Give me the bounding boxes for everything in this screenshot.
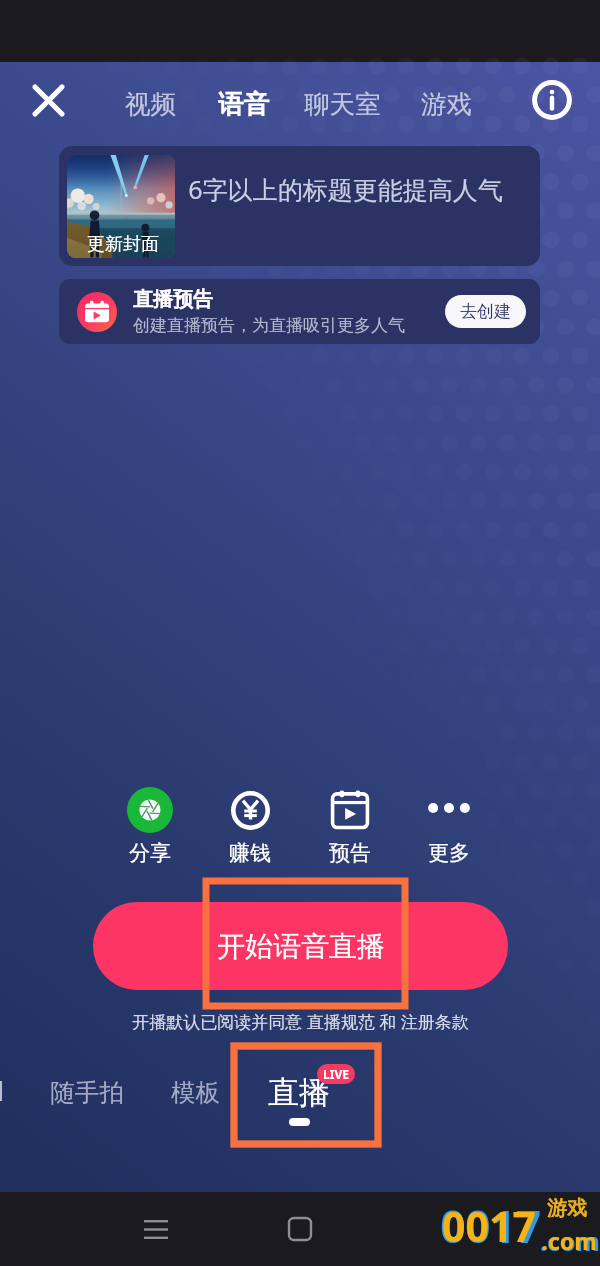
staticText: 随手拍 [50,1077,124,1108]
staticText: 模板 [171,1077,220,1108]
staticText: .com [541,1225,597,1256]
button[interactable]: 随手拍 [48,1075,126,1110]
button[interactable]: Close [22,74,74,126]
button[interactable]: 赚钱 [210,786,290,866]
staticText: 赚钱 [229,840,271,866]
button[interactable]: 分享 [110,786,190,866]
staticText: LIVE [323,1066,349,1082]
staticText: 直播 [268,1073,330,1112]
button[interactable]: Home [277,1206,323,1252]
staticText: 预告 [329,840,371,866]
staticText: 6字以上的标题更能提高人气 [188,172,503,206]
staticText: 游戏 [547,1196,587,1221]
staticText: 直播预告 [133,287,213,312]
staticText: 游戏 [421,88,472,120]
staticText: 更多 [428,840,470,866]
button[interactable]: 模板 [169,1075,222,1110]
button[interactable]: 预告 [310,786,390,866]
staticText: 开始语音直播 [217,929,385,964]
staticText: 聊天室 [304,88,381,120]
staticText: 语音 [218,88,269,120]
staticText: 开播默认已阅读并同意 直播规范 和 注册条款 [132,1010,469,1033]
button[interactable]: 更多 [409,786,489,866]
staticText: 更新封面 [87,233,159,256]
button[interactable]: Recents [133,1206,179,1252]
button[interactable]: 游戏 [419,82,474,126]
staticText: 创建直播预告，为直播吸引更多人气 [133,315,405,336]
staticText: 0017 [442,1198,536,1254]
staticText: 去创建 [460,301,511,322]
staticText: 视频 [125,88,176,120]
button[interactable]: Info [528,76,576,124]
staticText: 分享 [129,840,171,866]
button[interactable]: 视频 [123,82,178,126]
button[interactable]: 去创建 [445,295,526,328]
button[interactable]: 开始语音直播 [93,902,508,990]
button[interactable]: 直播预告 [59,279,540,344]
button[interactable]: 语音 [216,82,271,126]
staticText: 0017 [440,1196,541,1256]
button[interactable]: 直播 [253,1060,347,1134]
button[interactable]: 更新封面 [59,146,540,266]
staticText: .com [540,1224,600,1258]
button[interactable]: 聊天室 [302,82,383,126]
